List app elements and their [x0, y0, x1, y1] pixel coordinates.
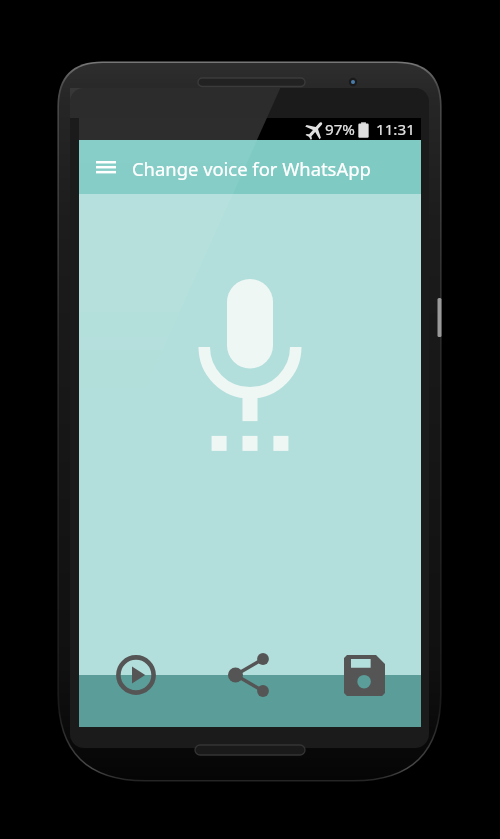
staticText: 97%	[325, 119, 355, 140]
button[interactable]: Play	[79, 649, 193, 701]
button[interactable]: Menu	[79, 140, 132, 194]
button[interactable]: Share	[193, 649, 307, 701]
staticText: 11:31	[376, 119, 415, 140]
staticText: Change voice for WhatsApp	[132, 156, 371, 181]
button[interactable]: Save	[307, 649, 421, 701]
